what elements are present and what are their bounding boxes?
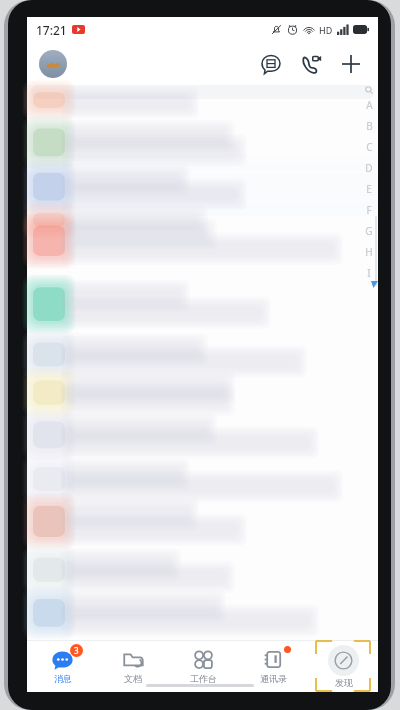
- button[interactable]: 文档: [98, 640, 168, 692]
- staticText: B: [366, 119, 373, 133]
- button[interactable]: 通讯录: [238, 640, 308, 692]
- staticText: I: [367, 266, 371, 280]
- staticText: E: [366, 182, 372, 196]
- staticText: D: [365, 161, 373, 175]
- button[interactable]: 工作台: [168, 640, 238, 692]
- staticText: HD: [319, 24, 333, 36]
- button[interactable]: Video call: [296, 49, 326, 79]
- button[interactable]: [39, 50, 67, 78]
- staticText: C: [366, 140, 373, 154]
- staticText: A: [366, 98, 373, 112]
- staticText: 17:21: [36, 22, 67, 38]
- staticText: 消息: [54, 673, 72, 684]
- button[interactable]: Scan: [256, 49, 286, 79]
- staticText: 3: [74, 645, 79, 656]
- staticText: 工作台: [190, 673, 217, 684]
- staticText: H: [365, 245, 373, 259]
- staticText: G: [365, 224, 373, 238]
- staticText: 发现: [335, 677, 353, 688]
- button[interactable]: 发现: [324, 643, 363, 690]
- button[interactable]: Add: [336, 49, 366, 79]
- staticText: 通讯录: [260, 673, 287, 684]
- staticText: F: [366, 203, 372, 217]
- button[interactable]: 3: [27, 640, 98, 692]
- staticText: 文档: [124, 673, 142, 684]
